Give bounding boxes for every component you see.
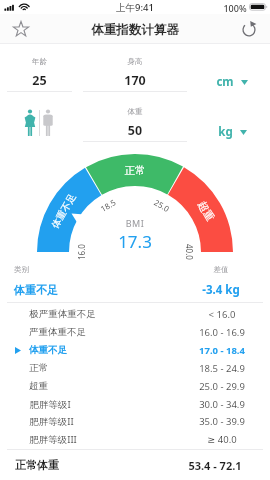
button[interactable]: kg	[218, 124, 247, 140]
staticText: 50	[83, 122, 187, 139]
staticText: 16.0 - 16.9	[167, 326, 270, 339]
staticText: 正常	[29, 362, 48, 374]
staticText: 肥胖等级I	[29, 398, 71, 411]
staticText: 极严重体重不足	[29, 308, 96, 320]
staticText: 体重不足	[29, 344, 67, 356]
staticText: 超重	[29, 380, 48, 392]
button[interactable]: Male	[39, 104, 57, 141]
button[interactable]: Favorite	[8, 16, 34, 42]
staticText: 肥胖等级II	[29, 415, 74, 428]
staticText: 身高	[83, 57, 187, 66]
staticText: 53.4 - 72.1	[175, 458, 255, 473]
staticText: 17.0 - 18.4	[167, 344, 270, 357]
staticText: 25.0 - 29.9	[167, 380, 270, 393]
button[interactable]: 肥胖等级III	[0, 430, 270, 448]
staticText: 差值	[166, 265, 270, 274]
staticText: 体重指数计算器	[0, 22, 270, 38]
staticText: 年龄	[7, 57, 72, 66]
button[interactable]: 严重体重不足	[0, 323, 270, 341]
button[interactable]: 体重不足	[0, 341, 270, 359]
staticText: kg	[218, 124, 233, 140]
staticText: 17.3	[0, 230, 270, 253]
button[interactable]: Refresh	[236, 16, 262, 42]
button[interactable]: 正常	[0, 359, 270, 377]
staticText: 体重不足	[14, 283, 58, 297]
staticText: 30.0 - 34.9	[167, 398, 270, 411]
staticText: 170	[83, 72, 187, 89]
staticText: 100%	[223, 2, 247, 14]
staticText: 25	[7, 72, 72, 89]
staticText: 类别	[14, 265, 29, 274]
staticText: 35.0 - 39.9	[167, 415, 270, 428]
button[interactable]: 肥胖等级II	[0, 412, 270, 430]
staticText: cm	[216, 74, 234, 90]
staticText: ≥ 40.0	[167, 433, 270, 446]
staticText: 肥胖等级III	[29, 433, 77, 446]
button[interactable]: 极严重体重不足	[0, 305, 270, 323]
button[interactable]: 肥胖等级I	[0, 395, 270, 413]
staticText: < 16.0	[167, 308, 270, 321]
staticText: 严重体重不足	[29, 326, 86, 338]
staticText: 18.5 - 24.9	[167, 362, 270, 375]
staticText: 体重	[83, 107, 187, 116]
staticText: 正常体重	[15, 458, 59, 472]
button[interactable]: cm	[216, 74, 248, 90]
staticText: 上午9:41	[116, 1, 154, 14]
staticText: -3.4 kg	[166, 282, 270, 298]
button[interactable]: Female	[20, 104, 39, 141]
button[interactable]: 超重	[0, 377, 270, 395]
staticText: BMI	[0, 217, 270, 229]
